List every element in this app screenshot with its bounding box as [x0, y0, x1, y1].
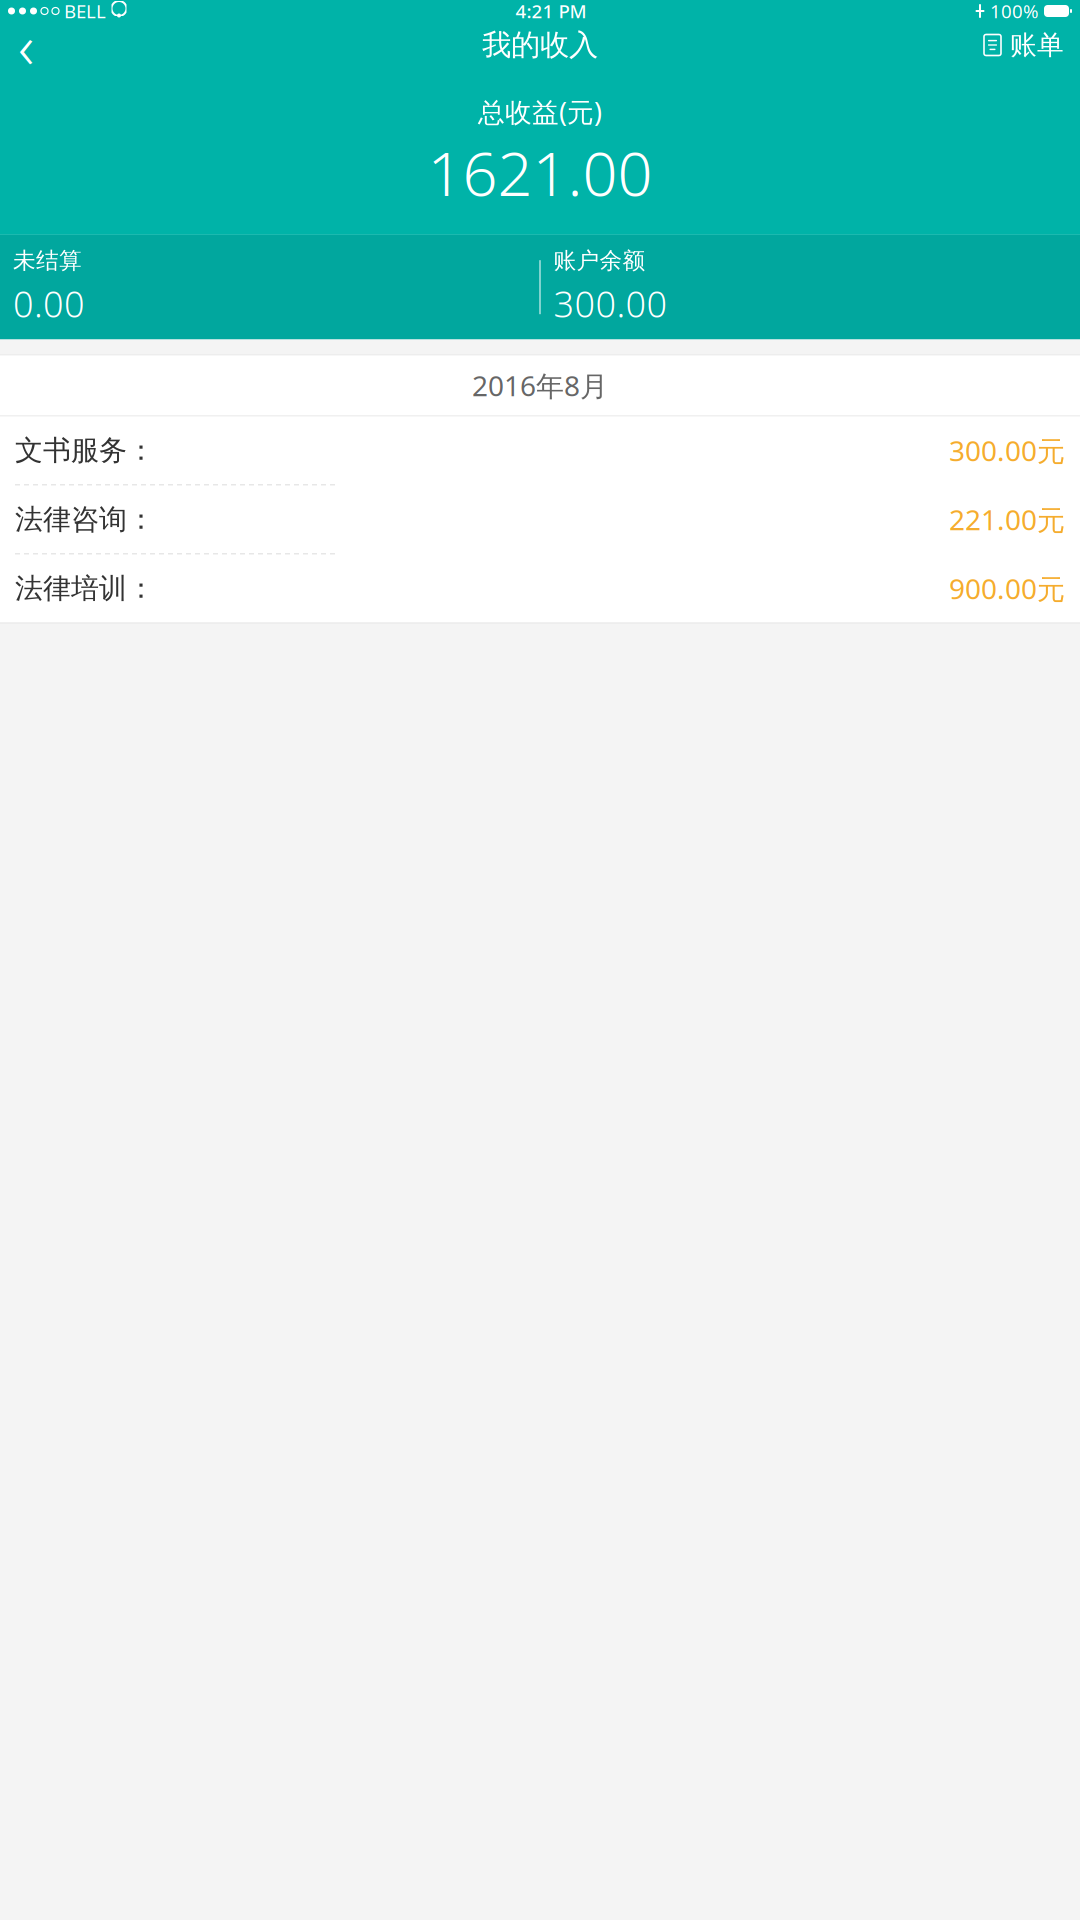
- staticText: 0.00: [13, 280, 85, 327]
- staticText: 账户余额: [553, 247, 645, 275]
- staticText: 1621.00: [427, 131, 652, 213]
- staticText: 法律培训：: [15, 571, 155, 606]
- button[interactable]: 法律培训：: [0, 554, 1080, 622]
- button[interactable]: 文书服务：: [0, 416, 1080, 484]
- staticText: 账单: [1010, 29, 1064, 61]
- staticText: 4:21 PM: [515, 0, 586, 23]
- staticText: 总收益(元): [478, 94, 602, 129]
- staticText: 未结算: [13, 247, 82, 275]
- staticText: 100%: [990, 0, 1039, 23]
- staticText: 300.00元: [949, 432, 1065, 469]
- staticText: 我的收入: [482, 27, 598, 63]
- staticText: 221.00元: [949, 501, 1065, 538]
- button[interactable]: 返回: [6, 23, 46, 67]
- staticText: 2016年8月: [472, 367, 608, 404]
- staticText: 文书服务：: [15, 433, 155, 468]
- staticText: 法律咨询：: [15, 502, 155, 537]
- button[interactable]: 法律咨询：: [0, 485, 1080, 553]
- staticText: ‹: [18, 4, 34, 86]
- staticText: 900.00元: [949, 570, 1065, 607]
- button[interactable]: 账单: [973, 23, 1074, 67]
- staticText: 300.00: [553, 280, 667, 327]
- staticText: BELL: [64, 0, 106, 23]
